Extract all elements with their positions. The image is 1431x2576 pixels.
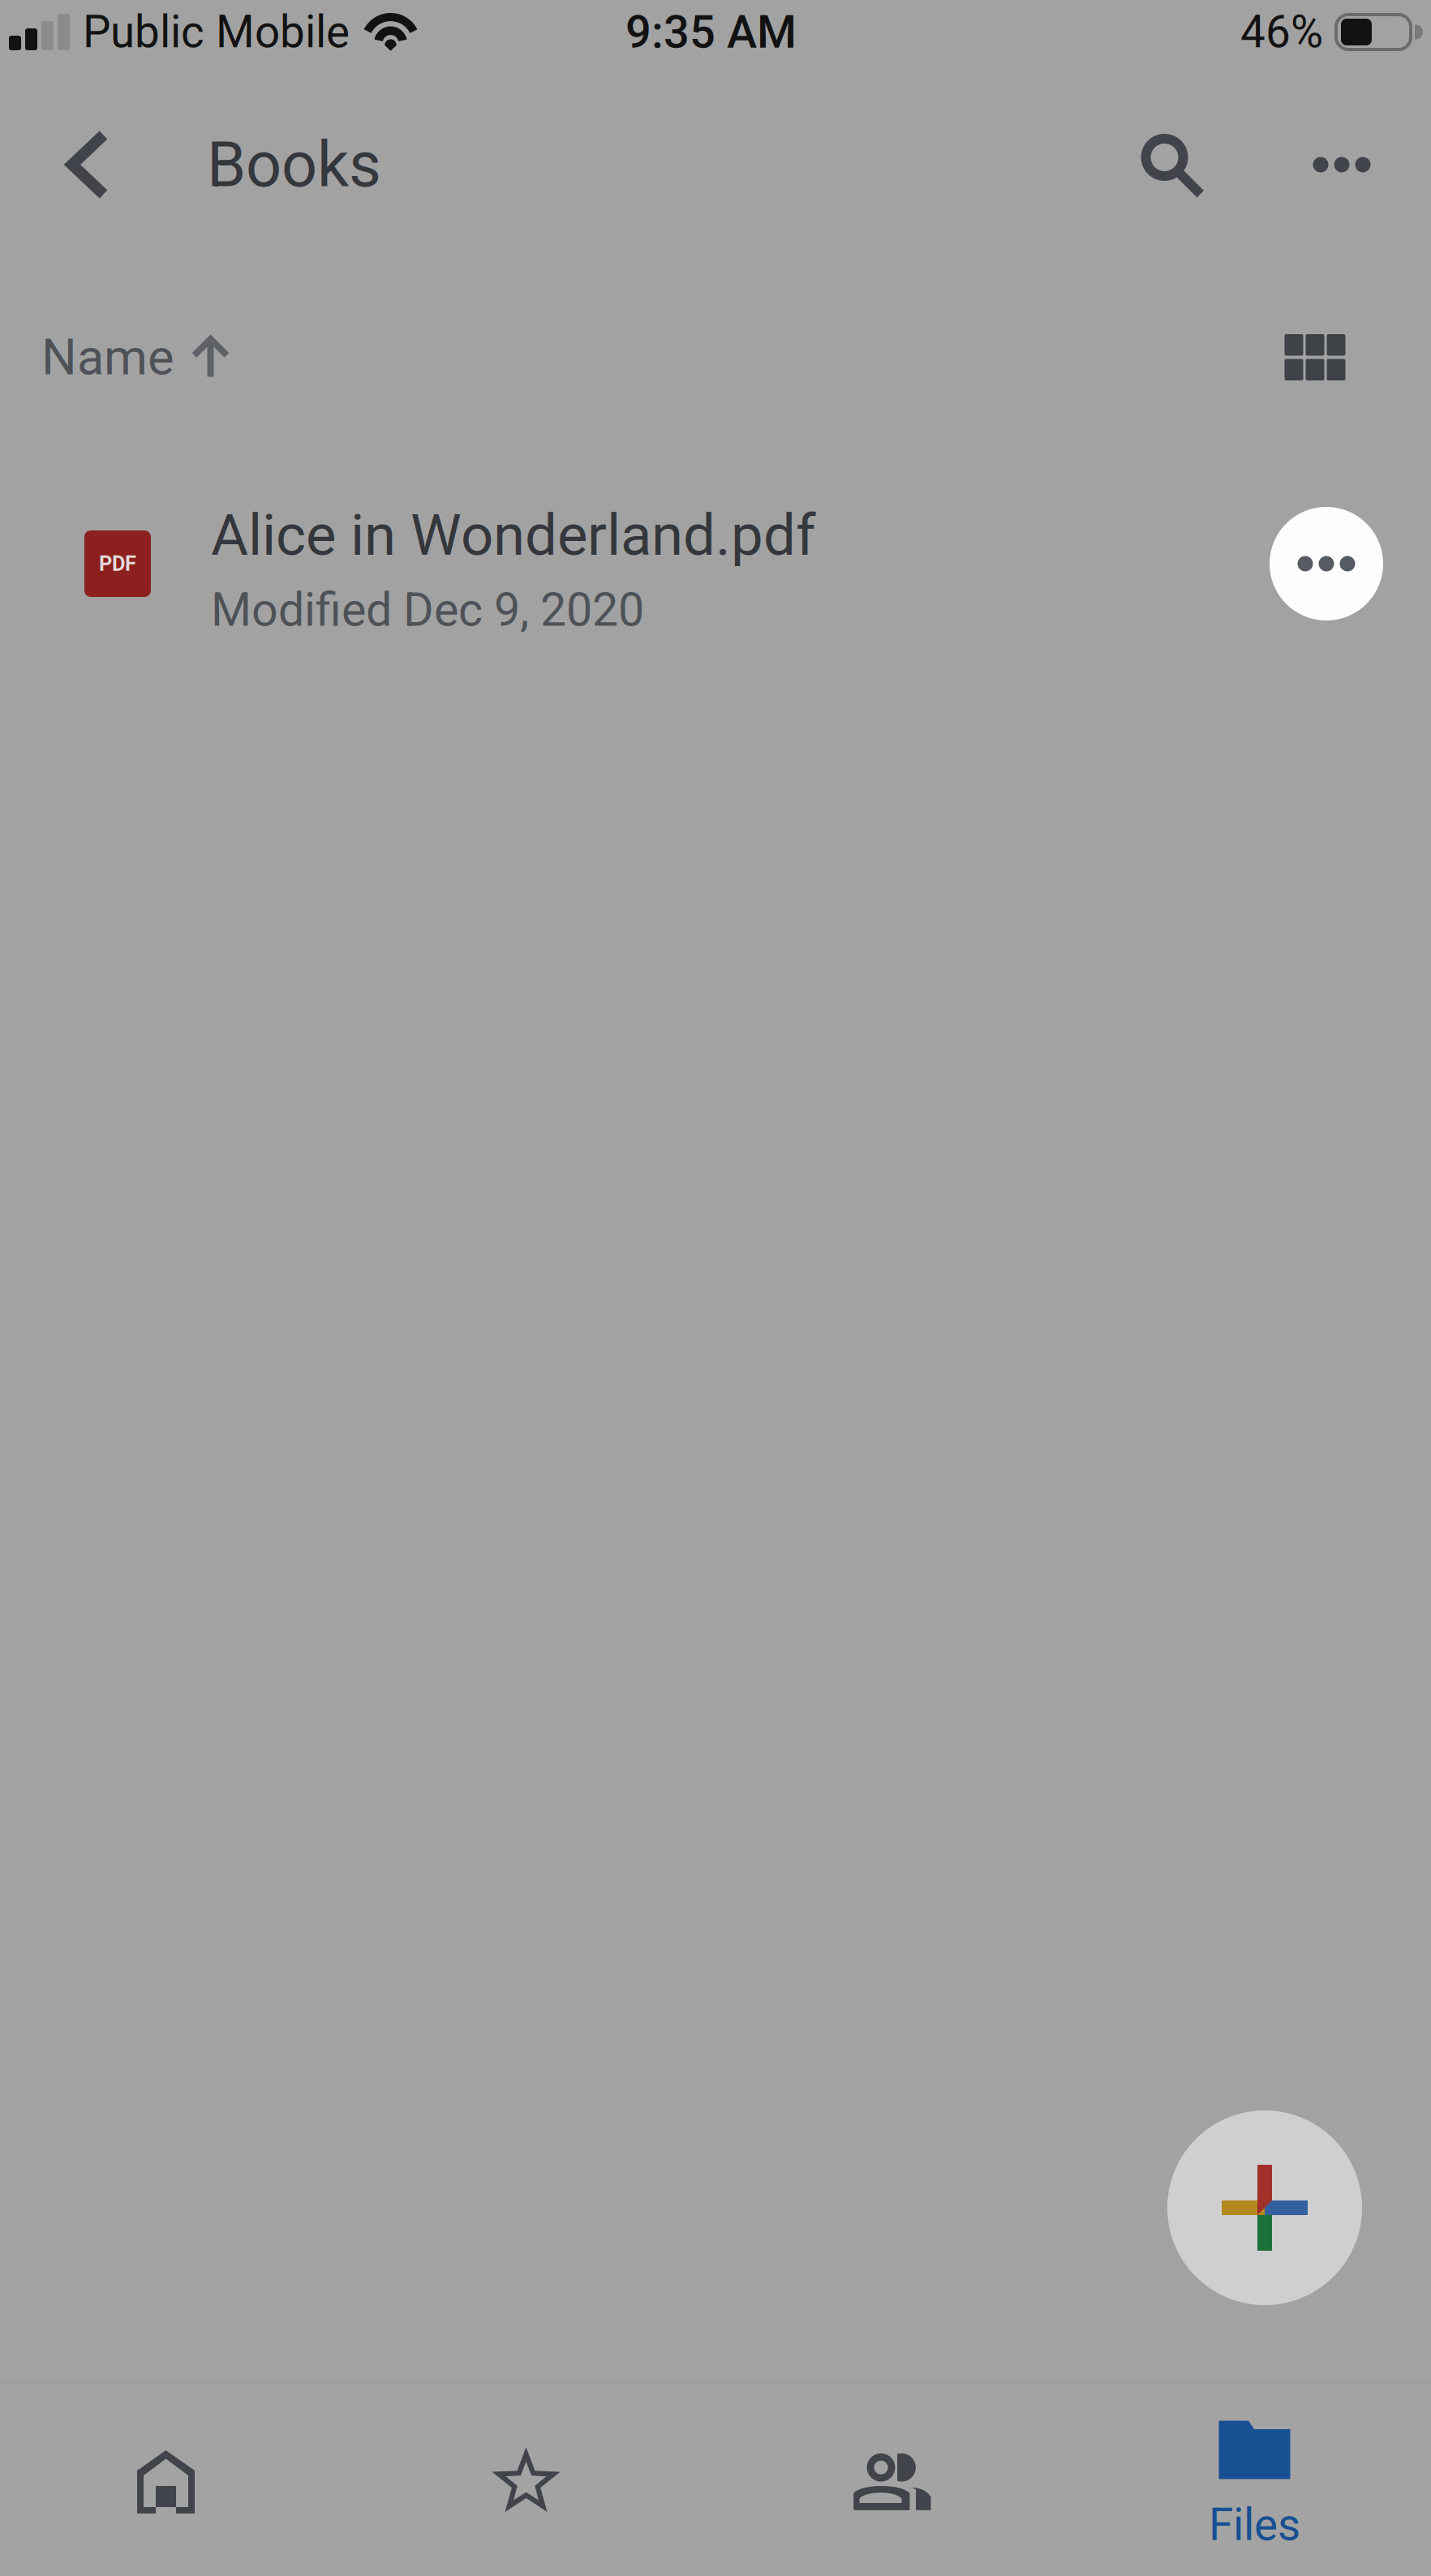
staticText: 46%	[1240, 6, 1323, 58]
button[interactable]: Books	[139, 68, 385, 261]
staticText: Alice in Wonderland.pdf	[211, 502, 816, 569]
button[interactable]: More options	[1281, 68, 1403, 261]
button[interactable]: Home	[0, 2385, 358, 2576]
button[interactable]: PDF	[0, 453, 1258, 674]
button[interactable]: Files	[1073, 2385, 1431, 2576]
button[interactable]: Starred	[358, 2385, 715, 2576]
button[interactable]: More actions for Alice in Wonderland.pdf	[1258, 453, 1394, 674]
staticText: 9:35 AM	[625, 5, 797, 59]
button[interactable]: Create new	[1167, 2110, 1362, 2305]
button[interactable]: Shared with me	[715, 2385, 1073, 2576]
staticText: Public Mobile	[83, 6, 350, 58]
button[interactable]: Name	[0, 261, 256, 453]
button[interactable]: Search	[1111, 68, 1281, 261]
staticText: Name	[41, 328, 174, 386]
staticText: PDF	[99, 552, 136, 576]
staticText: Modified Dec 9, 2020	[211, 583, 644, 637]
staticText: Files	[1209, 2499, 1300, 2551]
button[interactable]: Switch to grid view	[1250, 261, 1410, 453]
staticText: Books	[207, 128, 381, 201]
button[interactable]: Back	[32, 68, 139, 261]
